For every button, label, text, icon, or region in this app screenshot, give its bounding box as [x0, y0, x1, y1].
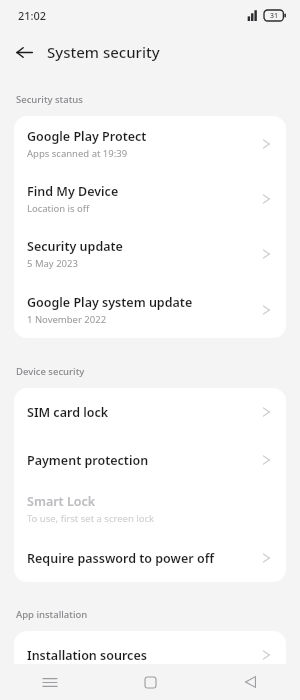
staticText: Google Play Protect [27, 128, 147, 145]
staticText: App installation [16, 608, 88, 621]
button[interactable]: Require password to power off [14, 534, 286, 582]
staticText: Security update [27, 238, 123, 255]
button[interactable]: SIM card lock [14, 388, 286, 436]
button[interactable]: Payment protection [14, 436, 286, 484]
staticText: Location is off [27, 202, 90, 215]
staticText: Security status [16, 93, 83, 106]
staticText: 1 November 2022 [27, 313, 107, 326]
button[interactable]: Home [100, 664, 200, 700]
staticText: Require password to power off [27, 550, 214, 567]
staticText: SIM card lock [27, 404, 109, 421]
button[interactable]: Recent apps [0, 664, 100, 700]
staticText: Smart Lock [27, 493, 96, 510]
button[interactable]: Back [200, 664, 300, 700]
button[interactable]: Find My Device [14, 171, 286, 226]
button[interactable]: Google Play Protect [14, 116, 286, 171]
staticText: To use, first set a screen lock [27, 512, 155, 525]
staticText: 5 May 2023 [27, 257, 78, 270]
staticText: Installation sources [27, 647, 147, 664]
staticText: System security [47, 42, 160, 62]
button[interactable]: Security update [14, 226, 286, 281]
staticText: Find My Device [27, 183, 119, 200]
staticText: Device security [16, 365, 85, 378]
button[interactable]: Google Play system update [14, 281, 286, 338]
staticText: 21:02 [18, 8, 47, 23]
staticText: Google Play system update [27, 294, 193, 311]
button[interactable]: Back [8, 36, 40, 68]
button[interactable]: Smart Lock [14, 484, 286, 534]
staticText: Apps scanned at 19:39 [27, 147, 128, 160]
staticText: 31 [270, 11, 279, 21]
staticText: Payment protection [27, 452, 149, 469]
button[interactable]: Installation sources [14, 631, 286, 679]
